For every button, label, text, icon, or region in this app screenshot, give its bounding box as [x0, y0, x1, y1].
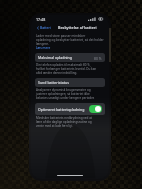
staticText: Lader med store pauser mindsker: [36, 34, 86, 38]
staticText: Analyserer dynamisk brugsmønstre og: [36, 88, 91, 92]
staticText: Din telefon oplades til maksimalt 80 %,: [36, 63, 91, 67]
button[interactable]: Optimeret batteriopladning: [35, 103, 105, 115]
button[interactable]: Maksimal opladning: [35, 53, 105, 62]
button[interactable]: Optimeret batteriopladning til: [89, 105, 102, 113]
staticText: justerer opladningen, så batteriet ikke: [36, 92, 90, 96]
staticText: Mindsker batteriets nedbrydning ved at: [36, 116, 92, 120]
button[interactable]: Læs mere: [36, 46, 51, 50]
button[interactable]: Tilbage: [35, 24, 52, 31]
staticText: Beskyttelse af batteri: [58, 25, 97, 30]
staticText: Sund batteristatus: [38, 80, 69, 85]
staticText: Optimeret batteriopladning: [38, 107, 85, 112]
staticText: opladning og beskytter batteriet, så det…: [36, 38, 104, 42]
staticText: 80 %: [94, 56, 102, 60]
staticText: hvilket forlænger batteriets levetid. Du…: [36, 67, 97, 71]
staticText: Maksimal opladning: [38, 55, 72, 60]
staticText: lære af din daglige opladningsrutine og: [36, 120, 92, 124]
button[interactable]: Sund batteristatus: [35, 78, 105, 87]
staticText: 17:48: [36, 17, 46, 22]
staticText: altid ændre denne indstilling.: [36, 71, 78, 75]
staticText: Batteri: [40, 25, 51, 30]
staticText: belastes unødigt under længere perioder.: [36, 96, 95, 100]
staticText: Læs mere: [36, 46, 51, 50]
staticText: vente med at lade færdigt.: [36, 124, 74, 128]
staticText: længere.: [36, 42, 49, 46]
